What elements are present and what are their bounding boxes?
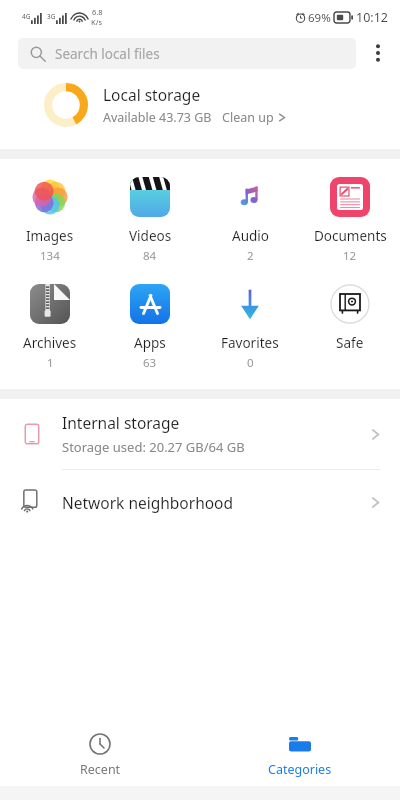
- button[interactable]: Archives: [0, 280, 100, 373]
- staticText: Videos: [129, 227, 172, 245]
- staticText: Clean up: [222, 109, 274, 126]
- staticText: Images: [26, 227, 74, 245]
- button[interactable]: Favorites: [200, 280, 300, 373]
- staticText: Available 43.73 GB: [103, 109, 212, 126]
- button[interactable]: Categories: [200, 724, 400, 786]
- staticText: Recent: [80, 761, 121, 778]
- staticText: Network neighborhood: [62, 492, 371, 513]
- staticText: Local storage: [103, 84, 201, 105]
- staticText: 0: [247, 355, 254, 371]
- button[interactable]: Local storage: [0, 72, 400, 138]
- staticText: Search local files: [55, 45, 160, 63]
- staticText: Archives: [23, 334, 77, 352]
- staticText: Categories: [268, 761, 332, 778]
- staticText: Storage used: 20.27 GB/64 GB: [62, 438, 245, 456]
- staticText: 10:12: [356, 9, 388, 26]
- staticText: Safe: [336, 334, 364, 352]
- staticText: 84: [143, 248, 157, 264]
- button[interactable]: Network neighborhood: [0, 470, 400, 534]
- button[interactable]: More options: [356, 34, 400, 72]
- button[interactable]: Apps: [100, 280, 200, 373]
- button[interactable]: Images: [0, 173, 100, 266]
- staticText: Favorites: [221, 334, 279, 352]
- staticText: Internal storage: [62, 412, 180, 433]
- staticText: Apps: [134, 334, 166, 352]
- staticText: 12: [343, 248, 357, 264]
- button[interactable]: Audio: [200, 173, 300, 266]
- button[interactable]: Documents: [300, 173, 400, 266]
- staticText: 2: [247, 248, 254, 264]
- staticText: 6.8: [92, 7, 103, 17]
- button[interactable]: Search local files: [18, 38, 356, 69]
- button[interactable]: Internal storage: [0, 399, 400, 469]
- staticText: 4G: [22, 12, 31, 21]
- staticText: 63: [143, 355, 157, 371]
- staticText: 1: [47, 355, 54, 371]
- button[interactable]: Safe: [300, 280, 400, 373]
- staticText: K/s: [91, 17, 103, 27]
- staticText: Audio: [232, 227, 269, 245]
- staticText: Documents: [314, 227, 387, 245]
- button[interactable]: Recent: [0, 724, 200, 786]
- staticText: 134: [40, 248, 60, 264]
- staticText: 3G: [47, 12, 56, 21]
- staticText: 69%: [308, 10, 331, 26]
- button[interactable]: Videos: [100, 173, 200, 266]
